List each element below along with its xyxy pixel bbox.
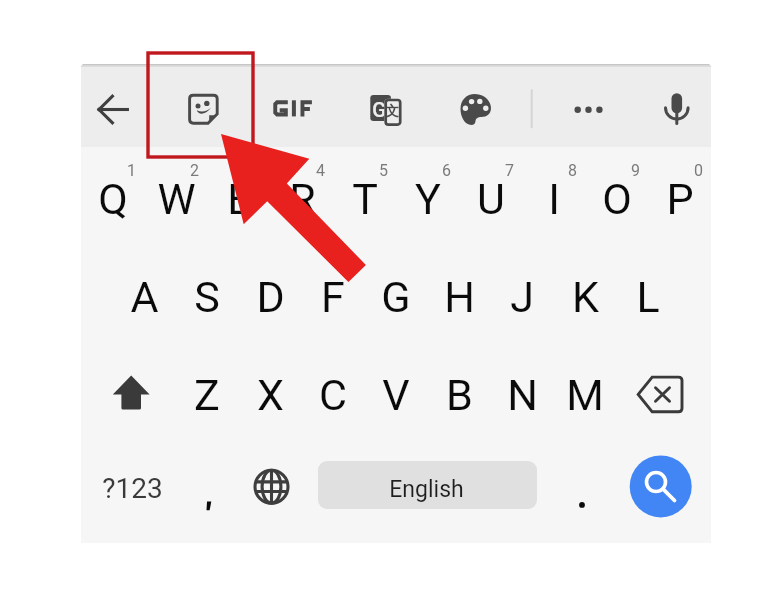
- staticText: T: [352, 174, 378, 224]
- button[interactable]: U: [459, 155, 522, 233]
- staticText: B: [446, 370, 473, 420]
- button[interactable]: Q: [81, 155, 144, 233]
- staticText: K: [572, 272, 599, 322]
- button[interactable]: .: [554, 456, 612, 518]
- button[interactable]: Backspace: [629, 357, 701, 431]
- button[interactable]: P: [648, 155, 711, 233]
- button[interactable]: W: [144, 155, 207, 233]
- button[interactable]: T: [333, 155, 396, 233]
- button[interactable]: B: [428, 357, 491, 431]
- staticText: 0: [694, 161, 703, 180]
- staticText: X: [257, 370, 284, 420]
- staticText: 6: [442, 161, 451, 180]
- button[interactable]: Shift: [91, 357, 163, 431]
- button[interactable]: K: [554, 255, 617, 333]
- button[interactable]: English: [318, 461, 537, 509]
- staticText: N: [507, 370, 538, 420]
- staticText: L: [636, 272, 660, 322]
- button[interactable]: More options: [565, 86, 611, 132]
- staticText: 8: [568, 161, 577, 180]
- button[interactable]: ?123: [101, 456, 183, 518]
- staticText: 7: [505, 161, 514, 180]
- staticText: 1: [127, 161, 136, 180]
- staticText: G: [381, 272, 411, 322]
- button[interactable]: L: [617, 255, 680, 333]
- staticText: O: [602, 174, 632, 224]
- button[interactable]: H: [428, 255, 491, 333]
- staticText: V: [382, 370, 410, 420]
- staticText: F: [321, 272, 345, 322]
- staticText: 5: [379, 161, 388, 180]
- staticText: E: [227, 174, 252, 224]
- staticText: R: [289, 174, 316, 224]
- button[interactable]: N: [491, 357, 554, 431]
- button[interactable]: Search: [630, 456, 692, 518]
- staticText: A: [130, 272, 159, 322]
- button[interactable]: A: [113, 255, 176, 333]
- staticText: S: [194, 272, 220, 322]
- staticText: 4: [316, 161, 325, 180]
- staticText: Q: [98, 174, 128, 224]
- button[interactable]: D: [239, 255, 302, 333]
- staticText: W: [157, 174, 196, 224]
- staticText: P: [666, 174, 694, 224]
- staticText: D: [256, 272, 285, 322]
- staticText: Z: [194, 370, 220, 420]
- button[interactable]: Change keyboard language: [243, 456, 301, 518]
- button[interactable]: V: [365, 357, 428, 431]
- button[interactable]: Theme: [453, 86, 499, 132]
- staticText: Y: [415, 174, 441, 224]
- staticText: I: [548, 174, 560, 224]
- staticText: ?123: [102, 472, 163, 505]
- staticText: C: [319, 370, 347, 420]
- staticText: 文: [385, 103, 399, 121]
- button[interactable]: X: [239, 357, 302, 431]
- button[interactable]: G: [365, 255, 428, 333]
- button[interactable]: Voice input: [654, 86, 700, 132]
- button[interactable]: GIF: [270, 86, 316, 132]
- button[interactable]: F: [302, 255, 365, 333]
- staticText: M: [566, 370, 604, 420]
- button[interactable]: Stickers: [181, 86, 227, 132]
- button[interactable]: R: [270, 155, 333, 233]
- staticText: English: [389, 476, 464, 503]
- staticText: H: [444, 272, 475, 322]
- staticText: J: [510, 272, 534, 322]
- button[interactable]: ,: [180, 456, 238, 518]
- staticText: 2: [190, 161, 199, 180]
- staticText: G: [372, 98, 386, 121]
- staticText: U: [477, 174, 505, 224]
- button[interactable]: E: [207, 155, 270, 233]
- button[interactable]: Translate: [362, 86, 408, 132]
- button[interactable]: C: [302, 357, 365, 431]
- button[interactable]: Y: [396, 155, 459, 233]
- button[interactable]: O: [585, 155, 648, 233]
- button[interactable]: J: [491, 255, 554, 333]
- button[interactable]: Back: [90, 86, 136, 132]
- button[interactable]: I: [522, 155, 585, 233]
- button[interactable]: M: [554, 357, 617, 431]
- button[interactable]: Z: [176, 357, 239, 431]
- staticText: 9: [631, 161, 640, 180]
- button[interactable]: S: [176, 255, 239, 333]
